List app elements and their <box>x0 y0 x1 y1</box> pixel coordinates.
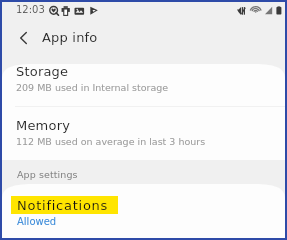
staticText: 112 MB used on average in last 3 hours <box>16 136 206 147</box>
staticText: App info <box>42 30 98 45</box>
staticText: 12:03 <box>16 4 45 16</box>
button[interactable]: Storage <box>2 64 285 106</box>
staticText: Storage <box>16 64 69 79</box>
staticText: App settings <box>17 169 78 180</box>
staticText: Notifications <box>17 198 109 213</box>
button[interactable]: Memory <box>2 107 285 160</box>
button[interactable]: Back <box>2 22 42 52</box>
button[interactable]: Notifications <box>2 184 285 236</box>
staticText: Allowed <box>17 216 57 228</box>
staticText: 209 MB used in Internal storage <box>16 82 169 93</box>
staticText: Memory <box>16 118 71 133</box>
